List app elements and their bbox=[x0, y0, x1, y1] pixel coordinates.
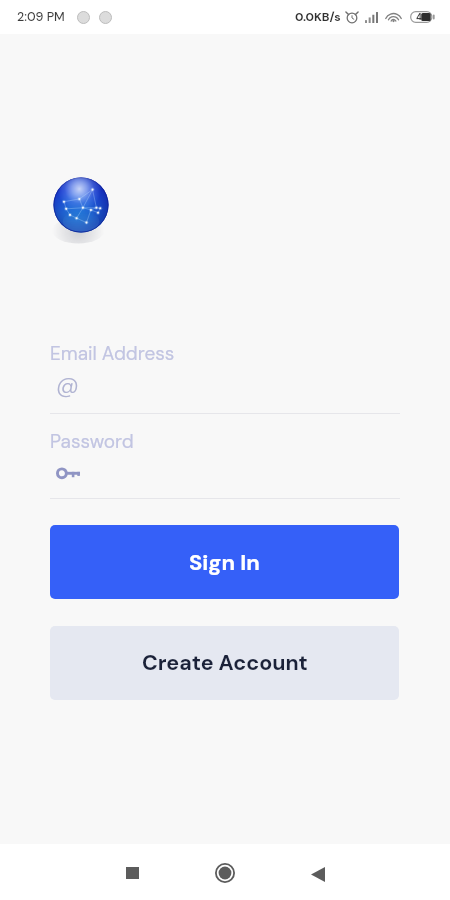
button[interactable]: Create Account bbox=[50, 626, 399, 700]
staticText: Password bbox=[50, 429, 134, 454]
staticText: 0.0KB/s bbox=[295, 9, 341, 25]
button[interactable]: Home bbox=[201, 849, 249, 897]
button[interactable]: Back bbox=[294, 850, 342, 898]
button[interactable]: Sign In bbox=[50, 525, 399, 599]
staticText: Email Address bbox=[50, 341, 175, 366]
staticText: 4 bbox=[416, 11, 422, 23]
staticText: 2:09 PM bbox=[17, 9, 65, 25]
staticText: Sign In bbox=[189, 548, 260, 577]
staticText: Create Account bbox=[142, 649, 308, 677]
staticText: @ bbox=[56, 370, 79, 400]
button[interactable]: Recent apps bbox=[108, 849, 156, 897]
